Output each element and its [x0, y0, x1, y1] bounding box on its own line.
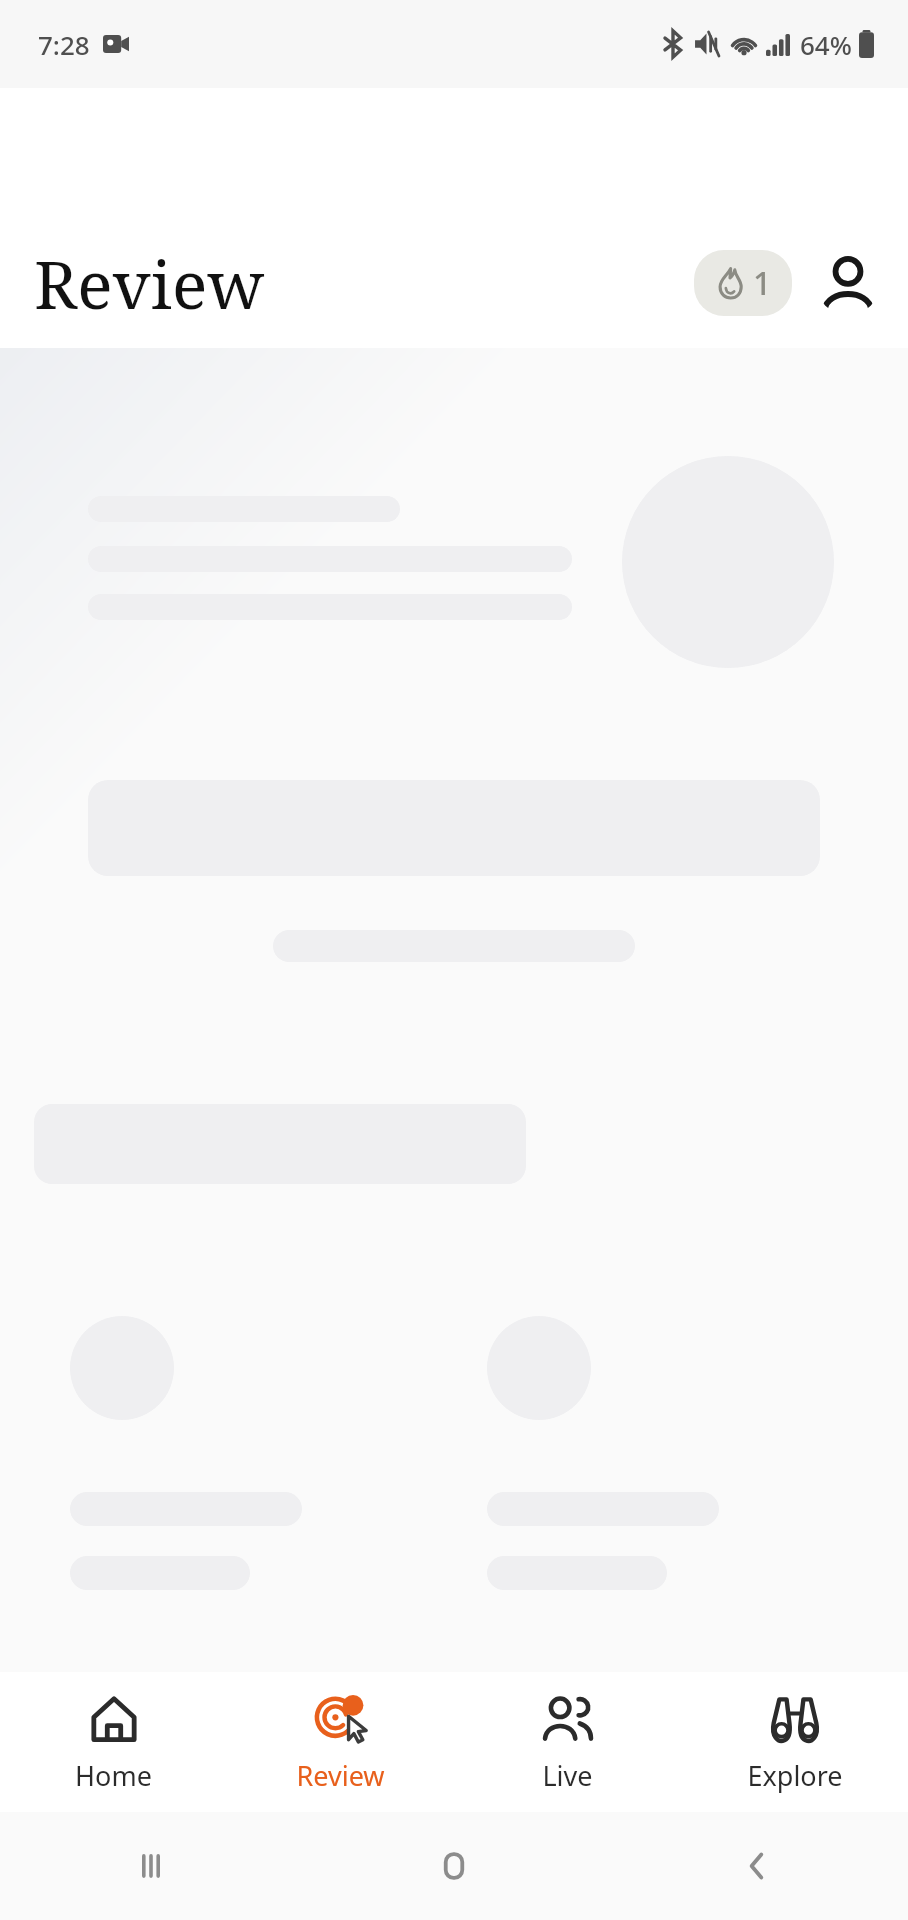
- staticText: 7:28: [38, 27, 90, 62]
- staticText: Home: [75, 1757, 152, 1794]
- staticText: Review: [34, 238, 265, 328]
- button[interactable]: Home: [302, 1812, 605, 1920]
- button[interactable]: 1: [694, 250, 792, 316]
- button[interactable]: Live: [454, 1672, 681, 1812]
- staticText: 1: [753, 261, 772, 305]
- button[interactable]: Home: [0, 1672, 227, 1812]
- staticText: Explore: [747, 1757, 843, 1794]
- staticText: Live: [542, 1757, 593, 1794]
- button[interactable]: Recents: [0, 1812, 302, 1920]
- staticText: Review: [296, 1757, 385, 1794]
- button[interactable]: Explore: [681, 1672, 908, 1812]
- button[interactable]: Review: [227, 1672, 454, 1812]
- button[interactable]: Back: [605, 1812, 908, 1920]
- button[interactable]: Profile: [816, 251, 880, 315]
- staticText: 64%: [800, 27, 852, 62]
